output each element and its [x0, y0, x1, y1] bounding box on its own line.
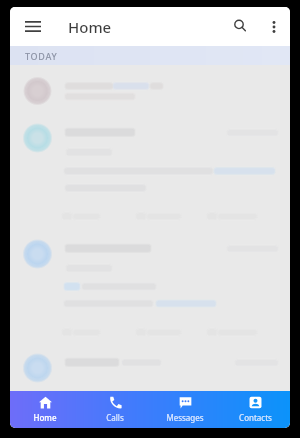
staticText: Home — [68, 17, 112, 37]
button[interactable]: Contacts — [220, 391, 290, 428]
button[interactable]: Home — [10, 391, 80, 428]
button[interactable]: Search — [223, 7, 257, 46]
staticText: Calls — [106, 412, 124, 423]
button[interactable] — [10, 65, 290, 428]
button[interactable]: More options — [257, 7, 290, 46]
button[interactable]: Messages — [150, 391, 220, 428]
button[interactable]: Calls — [80, 391, 150, 428]
staticText: Home — [33, 412, 57, 423]
button[interactable]: Open navigation menu — [10, 7, 56, 46]
staticText: Contacts — [239, 412, 272, 423]
staticText: Messages — [166, 412, 204, 423]
staticText: TODAY — [25, 50, 58, 62]
